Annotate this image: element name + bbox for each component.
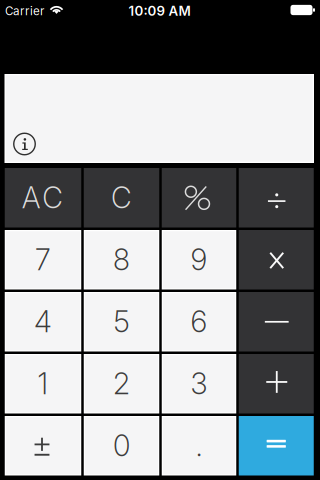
staticText: 10:09 AM	[128, 3, 190, 19]
staticText: .	[195, 428, 202, 463]
staticText: 0	[113, 428, 130, 463]
button[interactable]: 5	[84, 292, 159, 351]
button[interactable]: C	[84, 168, 159, 227]
staticText: 2	[113, 366, 130, 401]
button[interactable]: 1	[5, 354, 81, 413]
button[interactable]: 0	[84, 416, 159, 475]
button[interactable]: Info	[10, 130, 38, 158]
staticText: C	[111, 180, 132, 215]
staticText: 7	[35, 242, 51, 277]
staticText: 3	[190, 366, 207, 401]
staticText: 8	[113, 242, 130, 277]
button[interactable]: 8	[84, 230, 159, 289]
staticText: 6	[190, 304, 207, 339]
button[interactable]: Divide	[239, 168, 314, 227]
staticText: Carrier	[5, 4, 44, 18]
button[interactable]: 2	[84, 354, 159, 413]
button[interactable]: 7	[5, 230, 81, 289]
button[interactable]	[162, 168, 236, 227]
staticText: 5	[113, 304, 129, 339]
button[interactable]: Multiply	[239, 230, 314, 289]
button[interactable]: 3	[162, 354, 236, 413]
staticText: 9	[190, 242, 207, 277]
staticText: 1	[37, 366, 48, 401]
staticText: 4	[34, 304, 52, 339]
button[interactable]: Add	[239, 354, 314, 413]
button[interactable]: 6	[162, 292, 236, 351]
button[interactable]: 9	[162, 230, 236, 289]
button[interactable]: Plus minus	[5, 416, 81, 475]
button[interactable]: 4	[5, 292, 81, 351]
button[interactable]: Subtract	[239, 292, 314, 351]
button[interactable]: Equals	[239, 416, 314, 475]
staticText: AC	[22, 180, 63, 215]
button[interactable]: AC	[5, 168, 81, 227]
button[interactable]: .	[162, 416, 236, 475]
